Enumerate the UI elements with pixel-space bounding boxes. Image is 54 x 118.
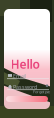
staticText: Password xyxy=(13,83,37,91)
staticText: Forgot password? xyxy=(33,89,54,94)
staticText: Hello xyxy=(10,56,39,72)
button[interactable]: Forgot password? xyxy=(33,89,54,94)
button[interactable] xyxy=(6,96,48,102)
button[interactable]: Show password xyxy=(6,83,10,86)
staticText: Email xyxy=(13,72,26,80)
